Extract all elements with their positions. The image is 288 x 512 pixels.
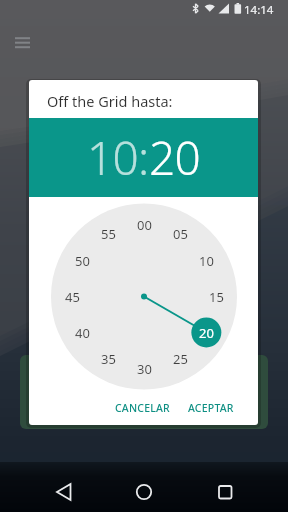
staticText: 00	[137, 216, 152, 234]
staticText: 55	[101, 225, 116, 243]
staticText: :	[138, 126, 149, 189]
staticText: 50	[75, 252, 90, 270]
button[interactable]: ACEPTAR	[181, 393, 240, 422]
button[interactable]	[209, 477, 241, 507]
staticText: CANCELAR	[115, 401, 170, 415]
staticText: 05	[173, 225, 188, 243]
button[interactable]	[48, 477, 80, 507]
staticText: 25	[173, 350, 188, 368]
button[interactable]: CANCELAR	[108, 393, 177, 422]
staticText: ACEPTAR	[188, 401, 234, 415]
staticText: 10	[199, 252, 214, 270]
staticText: 15	[209, 288, 224, 306]
staticText: Off the Grid hasta:	[47, 91, 173, 111]
staticText: 10	[87, 126, 138, 189]
staticText: 20	[199, 324, 214, 342]
staticText: 45	[65, 288, 80, 306]
staticText: 30	[137, 360, 152, 378]
staticText: 20	[149, 126, 200, 189]
staticText: 14:14	[244, 2, 274, 18]
button[interactable]	[128, 477, 160, 507]
staticText: 40	[75, 324, 90, 342]
staticText: 35	[101, 350, 116, 368]
